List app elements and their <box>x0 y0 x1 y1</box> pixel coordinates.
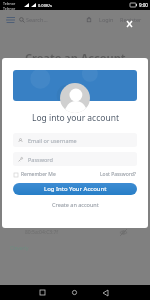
staticText: Register <box>120 16 142 23</box>
button[interactable]: Home <box>64 285 85 300</box>
button[interactable]: Create an account <box>50 200 101 209</box>
staticText: 80:5a:04:C3:7f <box>25 229 59 236</box>
button[interactable]: Back <box>95 285 116 300</box>
staticText: Log into your account <box>32 112 119 124</box>
button[interactable]: Log Into Your Account <box>13 183 137 195</box>
button[interactable]: Search... <box>19 16 48 23</box>
staticText: Create an Account <box>25 50 126 65</box>
staticText: Search... <box>26 16 48 23</box>
button[interactable]: Remember Me <box>13 171 57 178</box>
staticText: Email or username <box>28 137 77 144</box>
staticText: Log Into Your Account <box>44 185 107 193</box>
staticText: Login <box>99 16 114 23</box>
staticText: Telenor <box>3 6 16 11</box>
button[interactable]: Password <box>13 152 137 166</box>
button[interactable]: Lost Password? <box>99 171 137 178</box>
staticText: 9:00 <box>139 2 148 8</box>
staticText: Cleverly <box>10 245 29 252</box>
staticText: Remember Me <box>21 171 56 178</box>
staticText: Telenor <box>3 1 16 6</box>
button[interactable]: Login <box>99 16 114 23</box>
staticText: Create an account <box>52 201 99 208</box>
button[interactable]: Menu <box>4 10 17 29</box>
staticText: 0.00K/s <box>38 3 52 8</box>
button[interactable]: Register <box>120 16 142 23</box>
button[interactable]: Recent apps <box>32 285 53 300</box>
other: Account <box>87 17 91 22</box>
staticText: Lost Password? <box>100 171 136 178</box>
staticText: Password <box>28 156 53 163</box>
button[interactable]: Email or username <box>13 133 137 147</box>
other: Hide password <box>119 228 128 237</box>
